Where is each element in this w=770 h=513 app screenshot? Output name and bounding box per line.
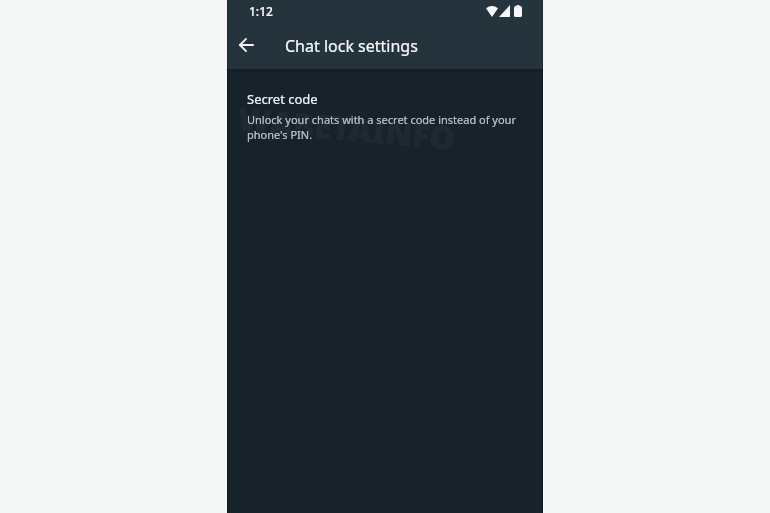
staticText: WABETAINFO bbox=[236, 97, 457, 160]
staticText: 1:12 bbox=[249, 3, 273, 19]
other: Wi-Fi bbox=[486, 5, 498, 17]
other: Mobile signal bbox=[499, 5, 510, 17]
other: Battery bbox=[514, 5, 522, 17]
button[interactable]: Back bbox=[228, 27, 264, 63]
staticText: Unlock your chats with a secret code ins… bbox=[247, 112, 523, 142]
staticText: Secret code bbox=[247, 90, 318, 108]
button[interactable]: Secret code bbox=[227, 90, 543, 152]
staticText: Chat lock settings bbox=[285, 35, 418, 57]
